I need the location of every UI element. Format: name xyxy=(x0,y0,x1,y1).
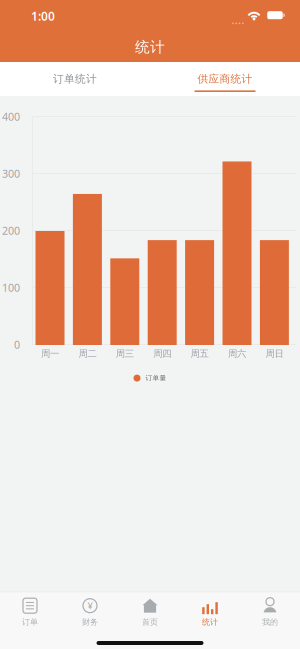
staticText: 周六 xyxy=(228,348,246,359)
staticText: 0 xyxy=(14,337,20,352)
button[interactable]: 订单 xyxy=(0,592,60,637)
staticText: 我的 xyxy=(262,617,278,627)
staticText: 100 xyxy=(2,280,20,295)
staticText: 周二 xyxy=(78,348,96,359)
staticText: 订单量 xyxy=(145,374,166,382)
staticText: 统计 xyxy=(202,617,218,627)
staticText: 订单 xyxy=(22,617,38,627)
staticText: 1:00 xyxy=(31,8,55,24)
staticText: 周五 xyxy=(191,348,209,359)
staticText: 供应商统计 xyxy=(197,72,252,85)
staticText: ¥ xyxy=(87,599,92,612)
staticText: 周日 xyxy=(265,348,283,359)
staticText: 周一 xyxy=(41,348,59,359)
staticText: 周四 xyxy=(153,348,171,359)
staticText: 订单统计 xyxy=(53,72,97,85)
button[interactable]: 供应商统计 xyxy=(150,62,300,96)
button[interactable]: ¥ xyxy=(60,592,120,637)
staticText: 300 xyxy=(2,166,20,181)
staticText: 首页 xyxy=(142,617,158,627)
staticText: 200 xyxy=(2,223,20,238)
button[interactable]: 统计 xyxy=(180,592,240,637)
button[interactable]: 首页 xyxy=(120,592,180,637)
staticText: 统计 xyxy=(135,38,165,56)
button[interactable]: 我的 xyxy=(240,592,300,637)
button[interactable]: 订单统计 xyxy=(0,62,150,96)
staticText: 400 xyxy=(2,109,20,124)
staticText: 财务 xyxy=(82,617,98,627)
staticText: 周三 xyxy=(116,348,134,359)
